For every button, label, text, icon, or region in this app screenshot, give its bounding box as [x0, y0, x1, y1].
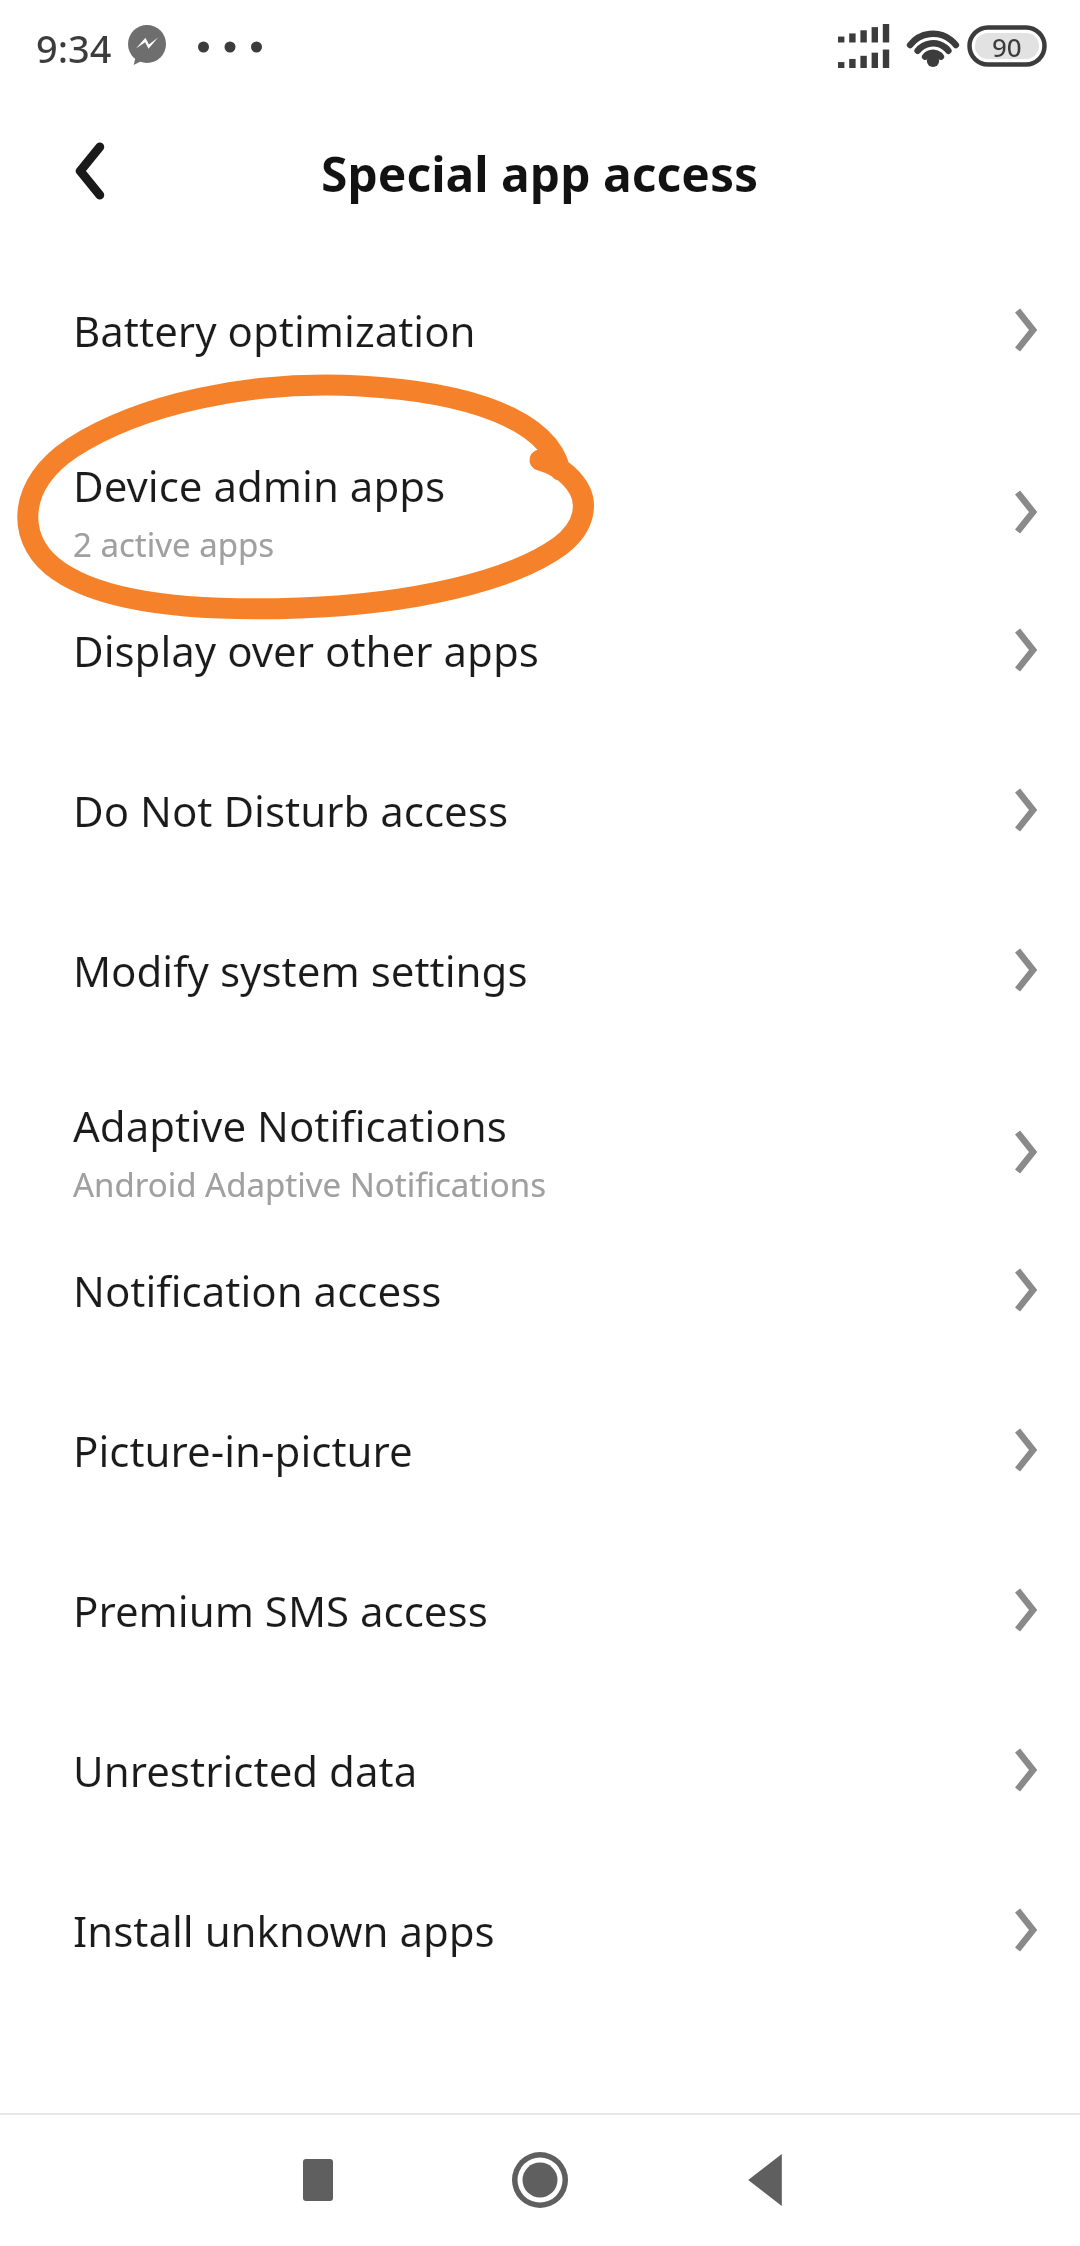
staticText: Device admin apps — [73, 457, 446, 514]
button[interactable]: Unrestricted data — [0, 1705, 1080, 1835]
button[interactable]: Back — [705, 2120, 825, 2240]
button[interactable]: Adaptive Notifications — [0, 1077, 1080, 1227]
staticText: Android Adaptive Notifications — [73, 1162, 546, 1207]
button[interactable]: Display over other apps — [0, 585, 1080, 715]
staticText: 9:34 — [36, 22, 112, 74]
staticText: 90 — [992, 29, 1022, 64]
staticText: Display over other apps — [73, 622, 539, 679]
button[interactable]: Notification access — [0, 1225, 1080, 1355]
staticText: Install unknown apps — [73, 1902, 495, 1959]
button[interactable]: Picture-in-picture — [0, 1385, 1080, 1515]
button[interactable]: Device admin apps — [0, 437, 1080, 587]
staticText: Adaptive Notifications — [73, 1097, 507, 1154]
button[interactable]: Install unknown apps — [0, 1865, 1080, 1995]
staticText: Do Not Disturb access — [73, 782, 509, 839]
button[interactable]: Do Not Disturb access — [0, 745, 1080, 875]
button[interactable]: Premium SMS access — [0, 1545, 1080, 1675]
staticText: Unrestricted data — [73, 1742, 418, 1799]
button[interactable]: Recent apps — [258, 2120, 378, 2240]
staticText: Modify system settings — [73, 942, 528, 999]
staticText: Notification access — [73, 1262, 442, 1319]
staticText: Battery optimization — [73, 302, 476, 359]
button[interactable]: Modify system settings — [0, 905, 1080, 1035]
staticText: 2 active apps — [73, 522, 275, 567]
staticText: Special app access — [321, 141, 759, 206]
button[interactable]: Back — [36, 135, 144, 207]
staticText: Picture-in-picture — [73, 1422, 413, 1479]
staticText: Premium SMS access — [73, 1582, 488, 1639]
button[interactable]: Battery optimization — [0, 265, 1080, 395]
button[interactable]: Home — [480, 2120, 600, 2240]
